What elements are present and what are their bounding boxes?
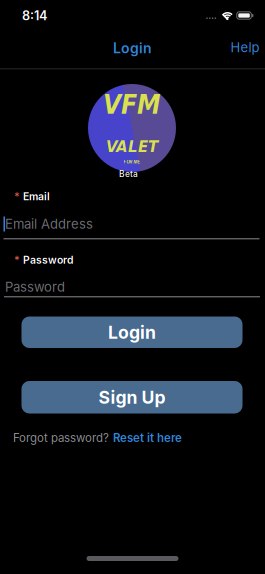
staticText: VALET bbox=[106, 137, 158, 156]
staticText: 8:14 bbox=[22, 8, 47, 23]
staticText: Email Address bbox=[5, 216, 93, 232]
staticText: Help bbox=[230, 40, 259, 55]
staticText: Forgot password? bbox=[13, 431, 109, 445]
button[interactable]: Login bbox=[21, 316, 242, 348]
staticText: Beta bbox=[119, 169, 138, 179]
button[interactable]: Email Address bbox=[3, 216, 259, 239]
staticText: Sign Up bbox=[98, 387, 165, 408]
staticText: FOR ME bbox=[123, 159, 140, 165]
staticText: Password bbox=[5, 279, 65, 295]
button[interactable]: Help bbox=[230, 40, 259, 55]
staticText: VFM bbox=[103, 89, 161, 120]
staticText: * bbox=[14, 190, 20, 203]
staticText: Reset it here bbox=[113, 431, 182, 445]
staticText: Email bbox=[23, 190, 50, 203]
button[interactable]: Reset it here bbox=[113, 431, 182, 445]
staticText: Login bbox=[113, 40, 152, 56]
button[interactable]: Password bbox=[4, 279, 260, 297]
button[interactable]: Sign Up bbox=[21, 381, 242, 413]
staticText: Password bbox=[23, 254, 73, 266]
staticText: * bbox=[14, 253, 20, 266]
staticText: Login bbox=[108, 322, 156, 343]
